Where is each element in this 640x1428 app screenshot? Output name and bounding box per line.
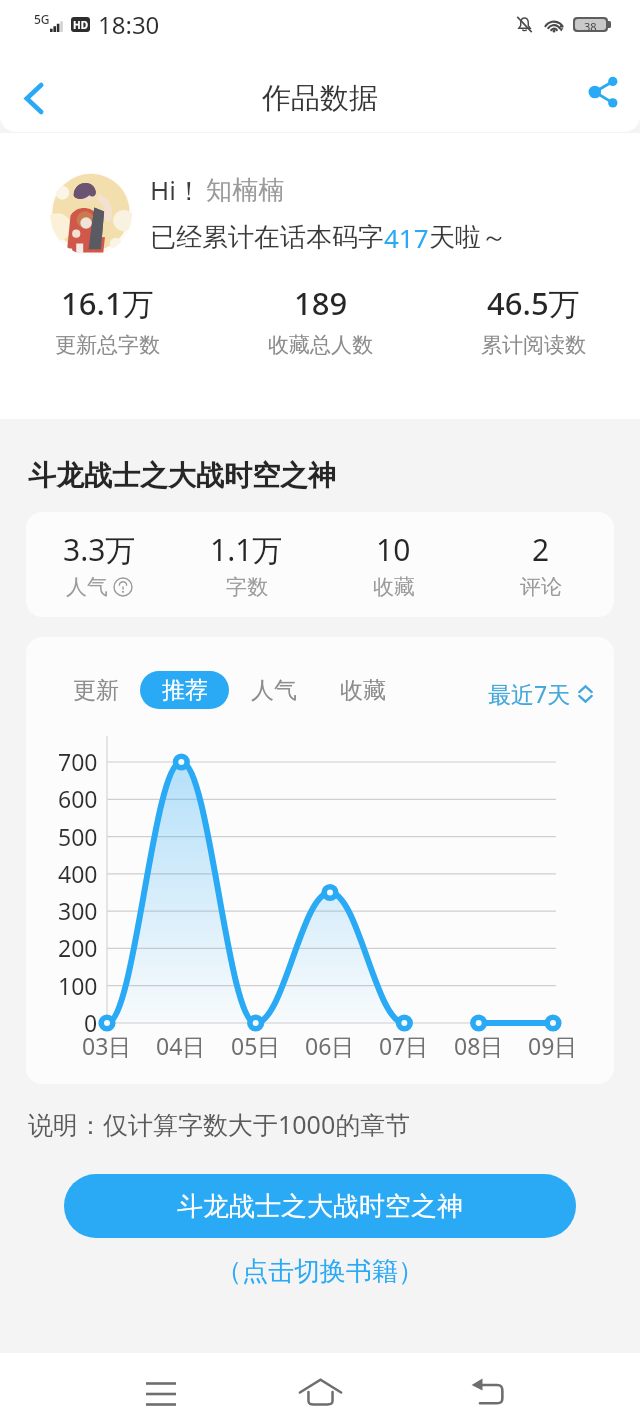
staticText: 累计阅读数 <box>481 332 586 358</box>
button[interactable]: 人气 <box>229 671 318 709</box>
staticText: 作品数据 <box>262 80 378 117</box>
staticText: 收藏 <box>373 574 415 600</box>
staticText: 09日 <box>528 1030 578 1061</box>
staticText: 417 <box>384 220 429 255</box>
staticText: 700 <box>58 746 98 777</box>
staticText: 0 <box>84 1007 98 1038</box>
staticText: 38 <box>584 19 597 30</box>
button[interactable]: （点击切换书籍） <box>216 1255 424 1288</box>
staticText: 10 <box>376 529 411 570</box>
button[interactable]: 斗龙战士之大战时空之神 <box>64 1174 576 1238</box>
staticText: 03日 <box>82 1030 132 1061</box>
staticText: 人气 <box>66 574 108 600</box>
staticText: 3.3万 <box>63 529 136 570</box>
staticText: 400 <box>58 858 98 889</box>
button[interactable]: 推荐 <box>140 671 229 709</box>
staticText: 189 <box>294 282 348 324</box>
staticText: 收藏 <box>340 676 386 705</box>
staticText: 600 <box>58 783 98 814</box>
button[interactable]: Recent apps <box>131 1364 191 1424</box>
staticText: 07日 <box>379 1030 429 1061</box>
staticText: 04日 <box>156 1030 206 1061</box>
staticText: 300 <box>58 895 98 926</box>
button[interactable]: 收藏 <box>318 671 407 709</box>
staticText: 说明：仅计算字数大于1000的章节 <box>28 1107 411 1141</box>
button[interactable]: Back <box>457 1361 517 1421</box>
button[interactable]: 更新 <box>51 671 140 709</box>
staticText: 斗龙战士之大战时空之神 <box>28 458 336 493</box>
staticText: 16.1万 <box>61 282 154 324</box>
staticText: 18:30 <box>98 8 160 41</box>
button[interactable]: Back <box>6 70 62 126</box>
staticText: 100 <box>58 970 98 1001</box>
staticText: 200 <box>58 932 98 963</box>
staticText: 字数 <box>226 574 268 600</box>
staticText: Hi！ <box>150 172 202 208</box>
staticText: 人气 <box>251 676 297 705</box>
staticText: 收藏总人数 <box>268 332 373 358</box>
staticText: 推荐 <box>162 676 208 705</box>
staticText: 更新 <box>73 676 119 705</box>
staticText: 46.5万 <box>487 282 580 324</box>
staticText: 最近7天 <box>488 678 571 709</box>
staticText: 05日 <box>231 1030 281 1061</box>
button[interactable]: 最近7天 <box>488 678 593 709</box>
staticText: 5G <box>34 11 50 27</box>
staticText: 06日 <box>305 1030 355 1061</box>
staticText: 天啦～ <box>429 221 507 254</box>
staticText: 斗龙战士之大战时空之神 <box>177 1190 463 1223</box>
staticText: 2 <box>532 529 550 570</box>
staticText: 评论 <box>520 574 562 600</box>
button[interactable]: Home <box>290 1362 350 1422</box>
staticText: 更新总字数 <box>55 332 160 358</box>
staticText: 08日 <box>454 1030 504 1061</box>
staticText: 已经累计在话本码字 <box>150 221 384 254</box>
staticText: 1.1万 <box>210 529 283 570</box>
button[interactable]: Share <box>581 70 625 114</box>
staticText: 500 <box>58 821 98 852</box>
staticText: HD <box>73 18 88 32</box>
staticText: 知楠楠 <box>206 174 284 207</box>
